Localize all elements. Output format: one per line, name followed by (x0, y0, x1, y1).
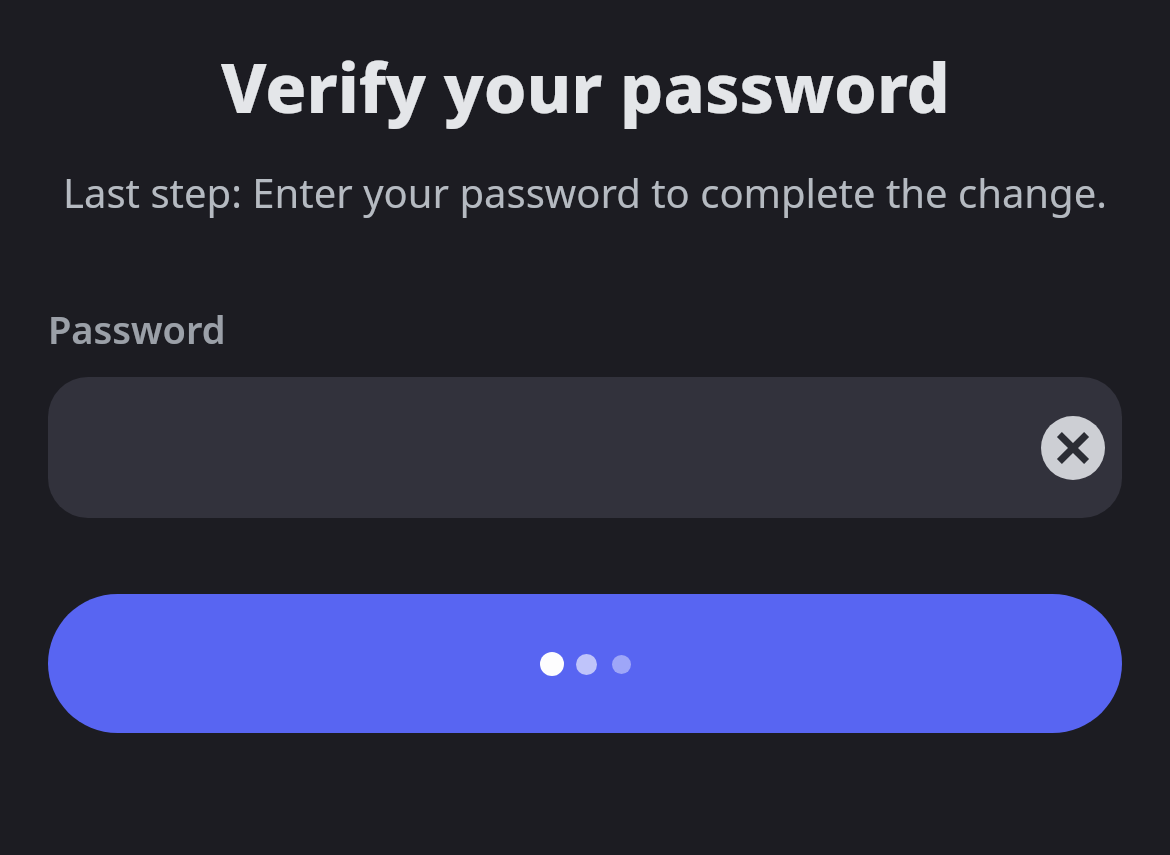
button[interactable]: Submitting password (48, 594, 1122, 733)
button[interactable]: Clear password (1041, 416, 1105, 480)
staticText: Password (48, 303, 226, 355)
button[interactable]: Clear password (48, 377, 1122, 518)
staticText: Last step: Enter your password to comple… (63, 165, 1107, 219)
staticText: Verify your password (221, 40, 950, 133)
